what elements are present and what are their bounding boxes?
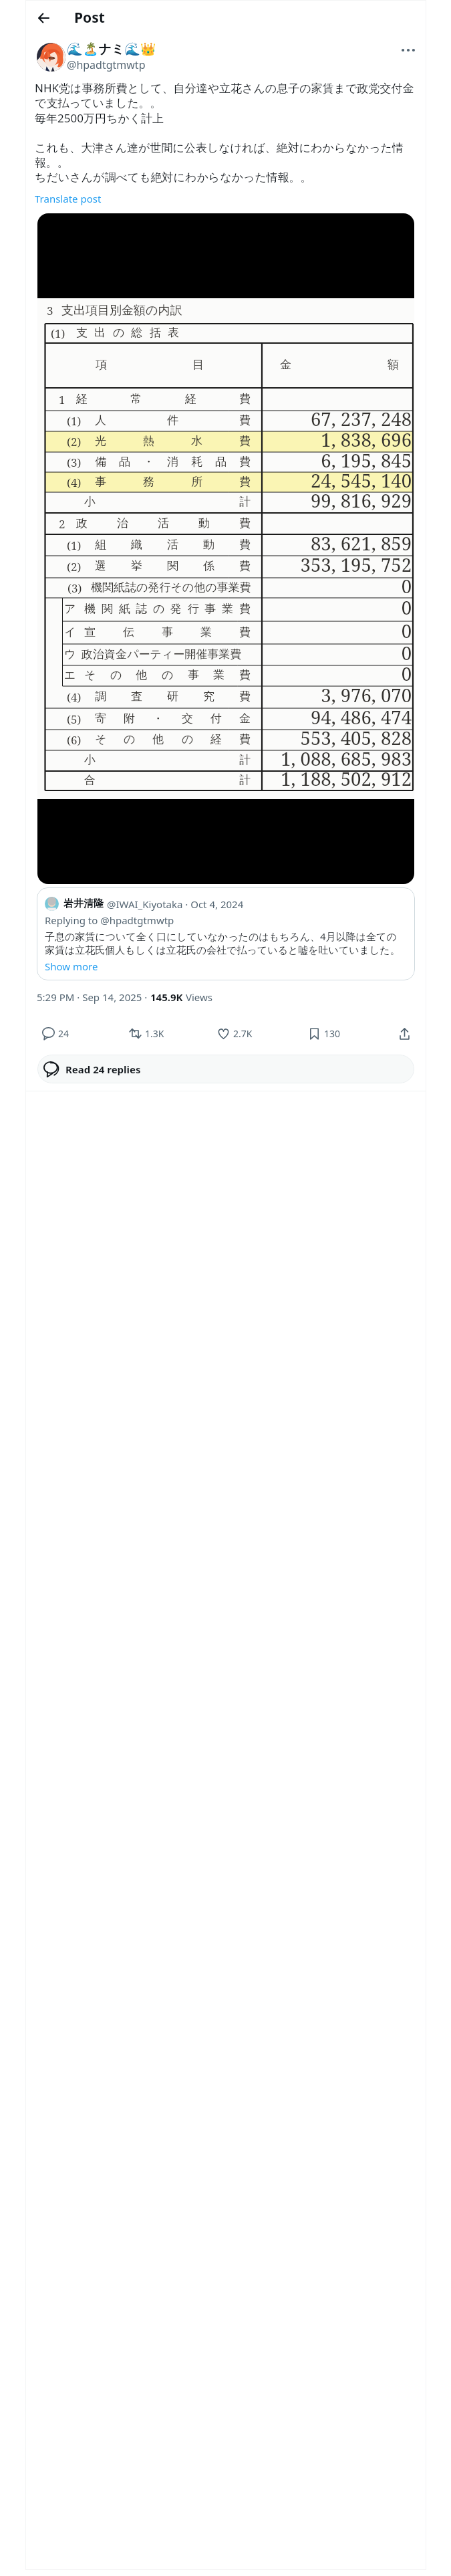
- staticText: NHK党は事務所費として、自分達や立花さんの息子の家賃まで政党交付金で支払ってい…: [35, 80, 417, 185]
- staticText: 費: [239, 602, 251, 616]
- staticText: (3): [67, 580, 82, 596]
- button[interactable]: 24: [36, 1021, 76, 1046]
- staticText: 経: [185, 392, 196, 406]
- staticText: 費: [239, 668, 251, 682]
- staticText: 政: [76, 516, 88, 530]
- staticText: 研: [167, 689, 178, 704]
- staticText: 誌: [136, 602, 147, 616]
- button[interactable]: Translate post: [35, 192, 102, 205]
- staticText: 括: [150, 326, 161, 340]
- staticText: 総: [131, 326, 142, 340]
- staticText: 附: [124, 712, 135, 726]
- staticText: 岩井清隆: [63, 897, 104, 910]
- staticText: 83, 621, 859: [211, 531, 412, 556]
- staticText: 人: [95, 413, 106, 427]
- staticText: 金: [239, 712, 251, 726]
- staticText: 0: [211, 661, 412, 686]
- staticText: 計: [239, 495, 251, 509]
- staticText: 🌊🏝️ナミ🌊👑: [67, 41, 156, 58]
- staticText: 項: [96, 358, 107, 372]
- staticText: 3: [47, 303, 53, 318]
- staticText: 1, 838, 696: [211, 427, 412, 452]
- staticText: 費: [239, 538, 251, 552]
- staticText: 選: [95, 559, 106, 573]
- staticText: Translate post: [35, 192, 102, 205]
- staticText: の: [182, 732, 194, 746]
- button[interactable]: Share: [392, 1021, 417, 1046]
- staticText: 活: [158, 516, 169, 530]
- staticText: 支出項目別金額の内訳: [61, 303, 182, 318]
- staticText: 寄: [95, 712, 106, 726]
- staticText: ア: [64, 602, 76, 616]
- button[interactable]: Attached image: [37, 213, 414, 884]
- staticText: イ: [64, 625, 76, 639]
- staticText: 動: [203, 538, 214, 552]
- staticText: 2.7K: [233, 1027, 253, 1040]
- staticText: 67, 237, 248: [211, 407, 412, 431]
- staticText: 353, 195, 752: [211, 552, 412, 577]
- button[interactable]: More options: [396, 38, 420, 62]
- staticText: 付: [210, 712, 222, 726]
- staticText: 事: [95, 475, 106, 489]
- staticText: の: [124, 732, 136, 746]
- staticText: 額: [388, 358, 399, 372]
- staticText: 目: [192, 358, 204, 372]
- staticText: 130: [324, 1027, 341, 1040]
- staticText: 所: [191, 475, 202, 489]
- staticText: (1): [67, 538, 82, 553]
- staticText: (3): [67, 455, 82, 470]
- staticText: Show more: [45, 960, 98, 973]
- button[interactable]: 2.7K: [211, 1021, 259, 1046]
- button[interactable]: 130: [302, 1021, 347, 1046]
- button[interactable]: Back: [30, 5, 57, 31]
- staticText: 品: [119, 455, 130, 469]
- staticText: 24, 545, 140: [211, 468, 412, 493]
- staticText: 小: [84, 495, 96, 509]
- staticText: 組: [95, 538, 106, 552]
- staticText: 行: [188, 602, 199, 616]
- staticText: 織: [131, 538, 142, 552]
- staticText: (4): [67, 475, 82, 490]
- staticText: 水: [191, 434, 202, 448]
- staticText: 交: [182, 712, 193, 726]
- staticText: 費: [239, 392, 251, 406]
- staticText: 紙: [119, 602, 130, 616]
- staticText: 光: [95, 434, 106, 448]
- staticText: 費: [239, 434, 251, 448]
- button[interactable]: Show more: [45, 960, 98, 973]
- staticText: 計: [239, 753, 251, 767]
- staticText: の: [113, 326, 125, 340]
- button[interactable]: Read 24 replies: [37, 1055, 414, 1083]
- staticText: 他: [152, 732, 164, 746]
- staticText: 常: [130, 392, 142, 406]
- staticText: 費: [239, 475, 251, 489]
- staticText: の: [162, 668, 174, 682]
- staticText: Read 24 replies: [65, 1063, 141, 1076]
- staticText: 動: [198, 516, 210, 530]
- staticText: 1: [59, 392, 65, 407]
- staticText: 事: [204, 602, 216, 616]
- staticText: (1): [67, 413, 82, 429]
- staticText: 業: [222, 602, 233, 616]
- button[interactable]: 1.3K: [123, 1021, 170, 1046]
- staticText: ・: [152, 712, 164, 726]
- button[interactable]: 岩井清隆: [37, 887, 415, 980]
- staticText: の: [153, 602, 165, 616]
- staticText: ・: [143, 455, 154, 469]
- staticText: 3, 976, 070: [211, 683, 412, 708]
- staticText: 治: [117, 516, 128, 530]
- button[interactable]: Profile photo: [37, 43, 65, 72]
- staticText: @IWAI_Kiyotaka · Oct 4, 2024: [107, 897, 244, 911]
- staticText: 費: [239, 516, 251, 530]
- staticText: エ: [64, 668, 76, 682]
- staticText: 経: [76, 392, 88, 406]
- staticText: 1, 188, 502, 912: [211, 766, 412, 791]
- staticText: 出: [94, 326, 106, 340]
